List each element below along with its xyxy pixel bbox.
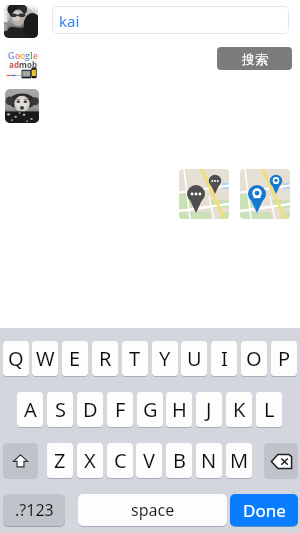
button[interactable]: F [107, 392, 133, 427]
staticText: A [24, 396, 37, 423]
staticText: b [32, 59, 37, 70]
staticText: S [55, 396, 66, 423]
staticText: V [143, 447, 155, 474]
staticText: space [131, 499, 175, 521]
staticText: H [172, 396, 187, 423]
staticText: m [19, 59, 27, 70]
staticText: N [201, 447, 217, 474]
button[interactable]: 搜索 [217, 47, 292, 70]
staticText: 搜索 [242, 51, 268, 67]
button[interactable]: A [17, 392, 43, 427]
staticText: C [114, 447, 127, 474]
staticText: o [27, 59, 32, 70]
button[interactable]: Backspace [264, 443, 298, 479]
staticText: K [233, 396, 246, 423]
staticText: T [129, 345, 141, 372]
staticText: Z [54, 447, 66, 474]
staticText: a [9, 59, 14, 70]
button[interactable]: W [32, 341, 58, 376]
staticText: G [143, 396, 158, 423]
staticText: R [99, 345, 112, 372]
button[interactable]: Profile photo [4, 5, 38, 38]
staticText: L [264, 396, 275, 423]
button[interactable]: O [241, 341, 267, 376]
button[interactable]: L [256, 392, 282, 427]
button[interactable]: Z [47, 443, 73, 478]
staticText: l [30, 49, 33, 61]
staticText: D [83, 396, 98, 423]
button[interactable]: T [122, 341, 148, 376]
staticText: X [84, 447, 96, 474]
button[interactable]: K [226, 392, 252, 427]
button[interactable]: B [166, 443, 192, 478]
button[interactable]: Done [230, 494, 298, 526]
button[interactable]: Google AdMob ad [5, 47, 41, 80]
staticText: U [187, 345, 202, 372]
button[interactable]: kai [52, 6, 289, 34]
button[interactable]: .?123 [3, 494, 65, 526]
button[interactable]: V [136, 443, 162, 478]
button[interactable]: S [47, 392, 73, 427]
staticText: J [206, 396, 212, 423]
button[interactable]: E [62, 341, 88, 376]
staticText: Done [243, 499, 286, 522]
button[interactable]: Y [152, 341, 178, 376]
staticText: G [8, 49, 15, 61]
button[interactable]: M [226, 443, 252, 478]
button[interactable]: space [78, 494, 227, 526]
button[interactable]: Map location [179, 169, 229, 219]
button[interactable]: I [211, 341, 237, 376]
button[interactable]: R [92, 341, 118, 376]
staticText: kai [59, 11, 80, 31]
button[interactable]: U [181, 341, 207, 376]
staticText: O [246, 345, 262, 372]
staticText: o [15, 49, 20, 61]
staticText: W [36, 345, 55, 372]
button[interactable]: H [166, 392, 192, 427]
button[interactable]: N [196, 443, 222, 478]
button[interactable]: D [77, 392, 103, 427]
button[interactable]: P [271, 341, 297, 376]
button[interactable]: Shift [3, 443, 38, 479]
button[interactable]: J [196, 392, 222, 427]
button[interactable]: Map location [240, 169, 290, 219]
staticText: Q [8, 345, 24, 372]
button[interactable]: Q [3, 341, 29, 376]
staticText: E [69, 345, 81, 372]
button[interactable]: X [77, 443, 103, 478]
staticText: P [278, 345, 291, 372]
staticText: Y [159, 345, 171, 372]
staticText: .?123 [15, 499, 54, 521]
staticText: e [33, 49, 38, 61]
staticText: I [221, 345, 228, 372]
button[interactable]: C [107, 443, 133, 478]
button[interactable]: G [137, 392, 163, 427]
staticText: g [25, 49, 30, 61]
staticText: F [115, 396, 126, 423]
button[interactable]: Photo [5, 89, 39, 123]
staticText: o [20, 49, 25, 61]
staticText: M [230, 447, 249, 474]
staticText: B [173, 447, 186, 474]
staticText: d [14, 59, 19, 70]
